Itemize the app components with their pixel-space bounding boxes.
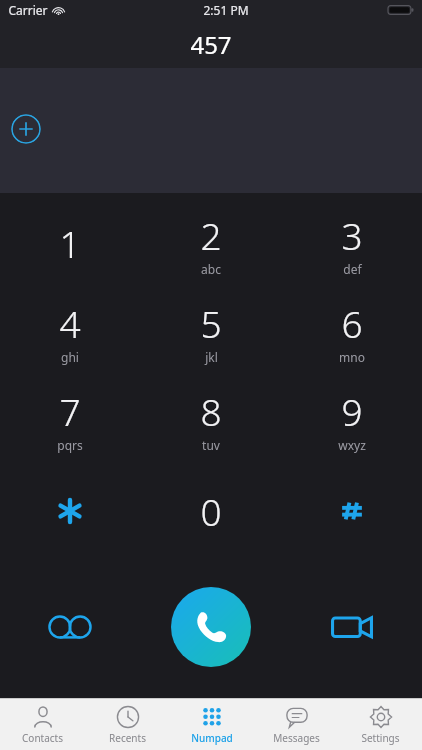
button[interactable]: 9 <box>281 375 422 463</box>
button[interactable]: Add contact <box>11 114 41 144</box>
button[interactable]: Messages <box>254 699 338 750</box>
button[interactable]: Voicemail <box>0 559 140 694</box>
button[interactable]: 0 <box>140 463 281 559</box>
staticText: 7 <box>59 386 81 436</box>
staticText: def <box>343 261 362 277</box>
button[interactable]: 7 <box>0 375 140 463</box>
button[interactable] <box>0 463 140 559</box>
button[interactable]: 5 <box>140 287 281 375</box>
staticText: Recents <box>109 731 146 745</box>
button[interactable]: Settings <box>338 699 422 750</box>
staticText: Messages <box>273 731 320 745</box>
staticText: 5 <box>200 298 222 348</box>
staticText: Contacts <box>22 731 63 745</box>
button[interactable] <box>281 463 422 559</box>
staticText: 3 <box>341 210 363 260</box>
staticText: Settings <box>361 731 400 745</box>
button[interactable]: Recents <box>85 699 170 750</box>
staticText: jkl <box>205 349 218 365</box>
button[interactable]: Call <box>171 587 251 667</box>
staticText: 9 <box>341 386 363 436</box>
button[interactable]: 6 <box>281 287 422 375</box>
staticText: 8 <box>200 386 222 436</box>
staticText: 457 <box>190 28 232 61</box>
staticText: tuv <box>202 437 220 453</box>
staticText: Carrier <box>8 2 48 18</box>
button[interactable]: 8 <box>140 375 281 463</box>
staticText: abc <box>201 261 221 277</box>
staticText: 4 <box>59 298 81 348</box>
staticText: 2 <box>200 210 222 260</box>
button[interactable]: 3 <box>281 199 422 287</box>
staticText: wxyz <box>338 437 366 453</box>
button[interactable]: Numpad <box>170 699 254 750</box>
button[interactable]: 2 <box>140 199 281 287</box>
staticText: 2:51 PM <box>203 2 249 18</box>
staticText: 6 <box>341 298 363 348</box>
button[interactable]: Video call <box>281 559 422 694</box>
staticText: 0 <box>200 486 222 536</box>
staticText: pqrs <box>57 437 83 453</box>
staticText: Numpad <box>191 731 233 745</box>
staticText: ghi <box>61 349 79 365</box>
button[interactable]: 4 <box>0 287 140 375</box>
button[interactable]: Contacts <box>0 699 85 750</box>
button[interactable]: 1 <box>0 199 140 287</box>
staticText: mno <box>339 349 365 365</box>
staticText: 1 <box>59 218 81 268</box>
